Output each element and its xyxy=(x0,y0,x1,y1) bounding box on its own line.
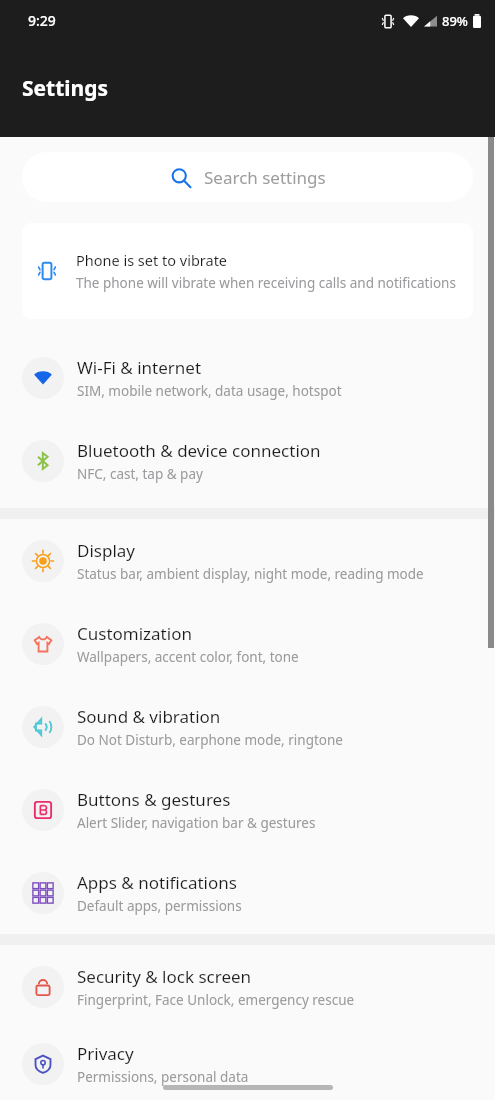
button[interactable]: Phone is set to vibrate xyxy=(22,223,473,319)
button[interactable]: Wi-Fi & internet xyxy=(0,336,495,419)
staticText: Sound & vibration xyxy=(77,705,221,728)
staticText: Settings xyxy=(22,74,109,103)
staticText: Fingerprint, Face Unlock, emergency resc… xyxy=(77,991,355,1009)
staticText: Permissions, personal data xyxy=(77,1068,249,1086)
staticText: Bluetooth & device connection xyxy=(77,439,321,462)
staticText: NFC, cast, tap & pay xyxy=(77,465,203,483)
staticText: 89% xyxy=(442,12,468,30)
staticText: 9:29 xyxy=(28,11,56,30)
staticText: Privacy xyxy=(77,1042,134,1065)
staticText: Do Not Disturb, earphone mode, ringtone xyxy=(77,731,343,749)
staticText: Apps & notifications xyxy=(77,871,237,894)
staticText: Security & lock screen xyxy=(77,965,252,988)
button[interactable]: Bluetooth & device connection xyxy=(0,419,495,502)
staticText: Phone is set to vibrate xyxy=(76,250,228,270)
staticText: The phone will vibrate when receiving ca… xyxy=(76,274,456,292)
staticText: Status bar, ambient display, night mode,… xyxy=(77,565,424,583)
staticText: Alert Slider, navigation bar & gestures xyxy=(77,814,316,832)
staticText: Display xyxy=(77,539,135,562)
button[interactable]: Apps & notifications xyxy=(0,851,495,934)
staticText: Wallpapers, accent color, font, tone xyxy=(77,648,299,666)
button[interactable]: Search settings xyxy=(22,152,473,202)
staticText: Default apps, permissions xyxy=(77,897,242,915)
button[interactable]: Security & lock screen xyxy=(0,945,495,1028)
button[interactable]: Privacy xyxy=(0,1028,495,1100)
button[interactable]: Display xyxy=(0,519,495,602)
button[interactable]: Customization xyxy=(0,602,495,685)
staticText: Customization xyxy=(77,622,192,645)
button[interactable]: Sound & vibration xyxy=(0,685,495,768)
staticText: Buttons & gestures xyxy=(77,788,231,811)
staticText: Search settings xyxy=(204,166,326,189)
staticText: Wi-Fi & internet xyxy=(77,356,202,379)
button[interactable]: Buttons & gestures xyxy=(0,768,495,851)
staticText: SIM, mobile network, data usage, hotspot xyxy=(77,382,342,400)
